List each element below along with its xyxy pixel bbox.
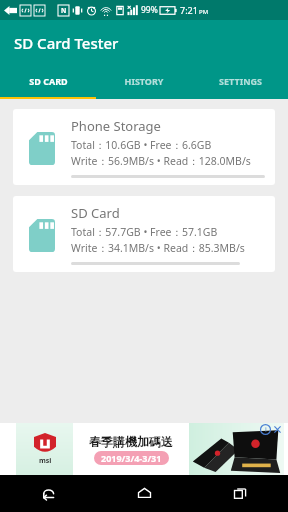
button[interactable]: Advertisement xyxy=(0,423,288,475)
button[interactable]: SD CARD xyxy=(0,65,96,97)
button[interactable]: SETTINGS xyxy=(192,65,288,97)
staticText: SD Card xyxy=(71,204,120,222)
staticText: SD Card Tester xyxy=(14,33,119,53)
staticText: 2019/3/4-3/31 xyxy=(101,452,162,464)
staticText: HISTORY xyxy=(124,75,164,87)
staticText: msi xyxy=(39,456,52,466)
staticText: i xyxy=(265,425,267,435)
staticText: SD CARD xyxy=(29,75,68,87)
staticText: SETTINGS xyxy=(219,75,262,87)
button[interactable]: SD Card xyxy=(13,196,275,272)
button[interactable]: Ad info xyxy=(260,424,271,435)
staticText: Total：57.7GB • Free：57.1GB xyxy=(71,225,218,239)
staticText: Write：56.9MB/s • Read：128.0MB/s xyxy=(71,154,251,168)
staticText: 99% xyxy=(141,4,158,16)
button[interactable]: Back xyxy=(0,475,96,512)
button[interactable]: Recent apps xyxy=(192,475,288,512)
button[interactable]: Phone Storage xyxy=(13,109,275,185)
staticText: Phone Storage xyxy=(71,117,161,135)
staticText: PM xyxy=(199,8,209,16)
staticText: 春季購機加碼送 xyxy=(89,434,173,449)
button[interactable]: Home xyxy=(96,475,192,512)
button[interactable]: HISTORY xyxy=(96,65,192,97)
staticText: 7:21 xyxy=(180,4,198,16)
staticText: N xyxy=(61,6,67,15)
staticText: Write：34.1MB/s • Read：85.3MB/s xyxy=(71,241,245,255)
staticText: Total：10.6GB • Free：6.6GB xyxy=(71,138,212,152)
button[interactable]: Close ad xyxy=(272,424,283,435)
